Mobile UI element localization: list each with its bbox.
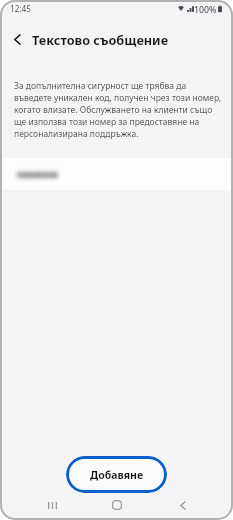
staticText: Текстово съобщение [32,31,169,48]
button[interactable]: Скорошни приложения [40,493,64,517]
button[interactable]: 08888888 [0,158,233,190]
staticText: 100% [194,4,217,16]
staticText: За допълнителна сигурност ще трябва да в… [14,80,223,140]
button[interactable]: Назад [171,493,195,517]
button[interactable]: Начало [105,493,129,517]
button[interactable]: Назад [6,29,28,49]
staticText: 12:45 [10,3,31,14]
staticText: Добавяне [90,468,144,482]
button[interactable]: Добавяне [66,456,167,493]
staticText: 08888888 [17,168,59,180]
